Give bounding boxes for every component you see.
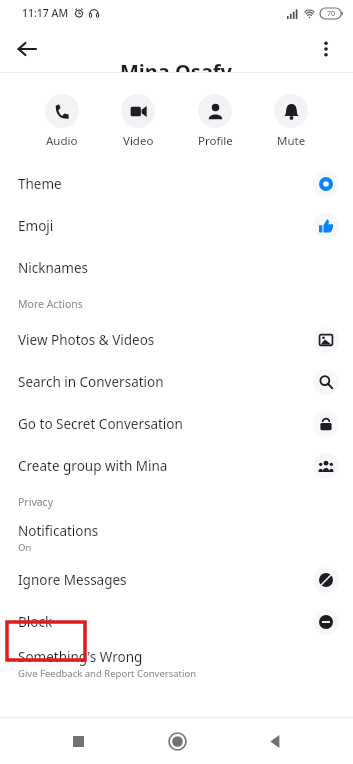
staticText: Profile (198, 133, 233, 149)
staticText: Give Feedback and Report Conversation (18, 667, 197, 680)
staticText: Mute (277, 133, 306, 149)
staticText: 11:17 AM (22, 6, 69, 20)
button[interactable]: Mute (263, 94, 319, 149)
staticText: Emoji (18, 217, 54, 235)
button[interactable]: Theme (0, 163, 353, 205)
staticText: On (18, 541, 32, 554)
staticText: Ignore Messages (18, 571, 127, 589)
button[interactable]: Home (156, 720, 198, 762)
button[interactable]: Back (254, 720, 296, 762)
staticText: View Photos & Videos (18, 331, 155, 349)
button[interactable]: Go to Secret Conversation (0, 403, 353, 445)
button[interactable]: Search in Conversation (0, 361, 353, 403)
button[interactable]: Notifications (0, 517, 353, 559)
staticText: Nicknames (18, 259, 89, 277)
button[interactable]: Ignore Messages (0, 559, 353, 601)
staticText: Block (18, 613, 53, 631)
staticText: 70 (327, 9, 336, 19)
button[interactable]: Video (110, 94, 166, 149)
staticText: Create group with Mina (18, 457, 168, 475)
button[interactable]: View Photos & Videos (0, 319, 353, 361)
staticText: More Actions (18, 297, 83, 311)
button[interactable]: Nicknames (0, 247, 353, 289)
button[interactable]: Recents (57, 720, 99, 762)
staticText: Mina Osafy (120, 58, 233, 72)
button[interactable]: Audio (34, 94, 90, 149)
button[interactable]: Back (8, 30, 46, 68)
button[interactable]: Something's Wrong (0, 643, 353, 685)
button[interactable]: Block (0, 601, 353, 643)
button[interactable]: Emoji (0, 205, 353, 247)
button[interactable]: More options (307, 30, 345, 68)
button[interactable]: Create group with Mina (0, 445, 353, 487)
staticText: Theme (18, 175, 62, 193)
staticText: Privacy (18, 495, 54, 509)
staticText: Something's Wrong (18, 648, 143, 666)
staticText: Video (123, 133, 154, 149)
staticText: Audio (46, 133, 78, 149)
staticText: Notifications (18, 522, 99, 540)
button[interactable]: Profile (187, 94, 243, 149)
staticText: Search in Conversation (18, 373, 164, 391)
staticText: Go to Secret Conversation (18, 415, 183, 433)
